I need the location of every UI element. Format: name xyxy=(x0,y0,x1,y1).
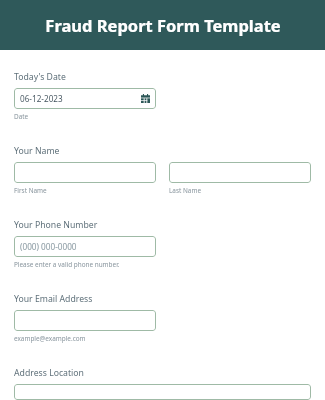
staticText: Your Email Address xyxy=(14,293,93,305)
staticText: example@example.com xyxy=(14,334,86,343)
staticText: Your Name xyxy=(14,145,60,157)
button[interactable] xyxy=(14,310,156,331)
staticText: 06-12-2023 xyxy=(20,93,63,104)
button[interactable]: 06-12-2023 xyxy=(14,88,156,109)
staticText: Last Name xyxy=(169,186,201,195)
staticText: (000) 000-0000 xyxy=(20,241,77,252)
staticText: First Name xyxy=(14,186,47,195)
button[interactable]: Fraud Report Form Template xyxy=(0,0,325,50)
button[interactable]: Choose date xyxy=(141,94,150,103)
staticText: Address Location xyxy=(14,367,84,379)
staticText: Date xyxy=(14,112,29,121)
button[interactable]: (000) 000-0000 xyxy=(14,236,156,257)
staticText: Your Phone Number xyxy=(14,219,98,231)
button[interactable] xyxy=(14,162,156,183)
staticText: Today's Date xyxy=(14,71,66,83)
button[interactable] xyxy=(14,384,311,400)
staticText: Please enter a valid phone number. xyxy=(14,260,120,269)
button[interactable] xyxy=(169,162,311,183)
staticText: Fraud Report Form Template xyxy=(45,14,281,36)
